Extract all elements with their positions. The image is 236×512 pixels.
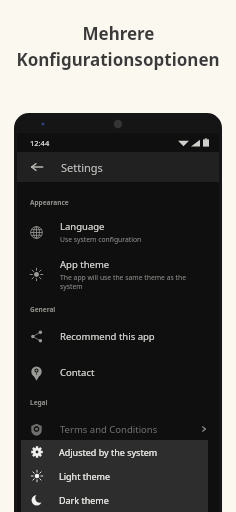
button[interactable]: Recommend this app [17,318,219,354]
staticText: Dark theme [59,494,109,506]
staticText: 12:44 [30,138,50,148]
button[interactable]: Light theme [21,464,208,488]
button[interactable]: Adjusted by the system [21,440,208,464]
button[interactable]: Language [17,211,219,253]
staticText: Contact [60,366,95,379]
staticText: Settings [61,160,103,175]
button[interactable]: Contact [17,354,219,390]
button[interactable]: Dark theme [21,488,208,512]
staticText: The app will use the same theme as the s… [60,273,209,291]
button[interactable]: Back [29,159,45,175]
staticText: Language [60,220,105,233]
staticText: Adjusted by the system [59,446,158,458]
button[interactable]: Terms and Conditions [17,411,219,447]
staticText: Light theme [59,470,111,482]
staticText: Use system configuration [60,235,142,244]
staticText: Terms and Conditions [60,423,158,436]
staticText: App theme [60,258,110,271]
staticText: Konfigurationsoptionen [16,48,220,71]
staticText: Appearance [30,198,69,207]
staticText: Mehrere [82,22,155,45]
staticText: Recommend this app [60,330,155,343]
button[interactable]: App theme [17,253,219,295]
staticText: Legal [30,398,48,407]
button[interactable]: Back [17,152,219,182]
staticText: General [30,305,56,314]
